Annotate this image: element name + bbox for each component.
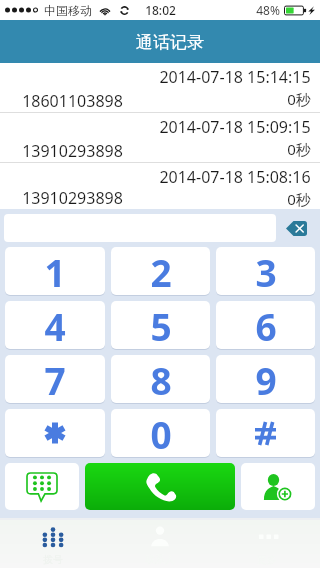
staticText: 0秒	[287, 189, 311, 209]
button[interactable]: Key #	[216, 409, 315, 457]
staticText: 4	[44, 301, 66, 349]
button[interactable]: Message	[5, 463, 79, 510]
staticText: 8	[150, 355, 172, 403]
button[interactable]: Add contact	[241, 463, 315, 510]
staticText: 18601103898	[22, 90, 123, 112]
button[interactable]: Key 6	[216, 301, 315, 349]
staticText: 0秒	[287, 89, 311, 109]
staticText: 2014-07-18 15:08:16	[159, 166, 311, 188]
button[interactable]: Key 1	[5, 247, 105, 295]
staticText: 3	[255, 247, 277, 295]
staticText: 6	[255, 301, 277, 349]
button[interactable]: Key 3	[216, 247, 315, 295]
button[interactable]: 2014-07-18 15:14:15	[0, 63, 320, 112]
staticText: 13910293898	[22, 187, 123, 209]
staticText: 7	[44, 355, 66, 403]
button[interactable]: 2014-07-18 15:09:15	[0, 113, 320, 162]
staticText: 9	[255, 355, 277, 403]
staticText: 2014-07-18 15:09:15	[159, 116, 311, 138]
staticText: 2014-07-18 15:14:15	[159, 66, 311, 88]
button[interactable]: Key 0	[111, 409, 210, 457]
button[interactable]: Key *	[5, 409, 105, 457]
staticText: 中国移动	[44, 3, 92, 18]
staticText: 通话记录	[136, 32, 204, 53]
button[interactable]: Key 2	[111, 247, 210, 295]
staticText: 48%	[256, 2, 280, 18]
button[interactable]: 拨号	[0, 520, 106, 568]
button[interactable]: Key 4	[5, 301, 105, 349]
staticText: 13910293898	[22, 140, 123, 162]
button[interactable]: Call	[85, 463, 235, 510]
button[interactable]: Key 9	[216, 355, 315, 403]
button[interactable]: Key 7	[5, 355, 105, 403]
button[interactable]: Backspace	[281, 214, 311, 242]
staticText: 5	[150, 301, 172, 349]
staticText: 0	[150, 409, 172, 457]
button[interactable]: Key 8	[111, 355, 210, 403]
button[interactable]: Key 5	[111, 301, 210, 349]
staticText: 1	[44, 247, 66, 295]
button[interactable]: 2014-07-18 15:08:16	[0, 163, 320, 209]
staticText: 2	[150, 247, 172, 295]
staticText: 0秒	[287, 139, 311, 159]
staticText: 18:02	[145, 2, 176, 18]
